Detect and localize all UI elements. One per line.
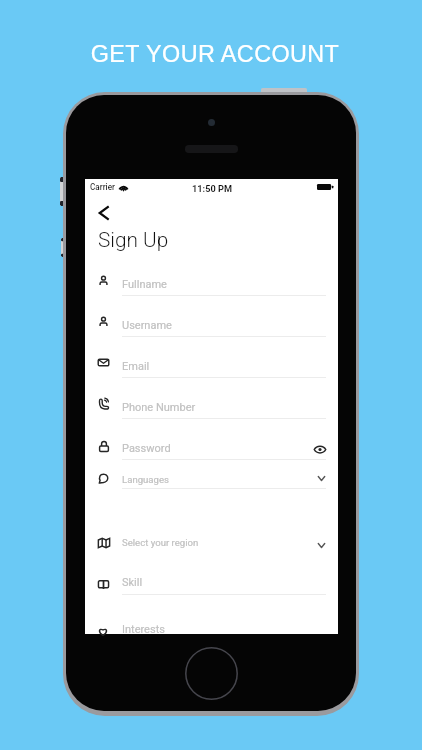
staticText: Sign Up <box>98 228 169 252</box>
staticText: Phone Number <box>122 401 196 414</box>
staticText: Interests <box>122 623 165 636</box>
staticText: GET YOUR ACCOUNT <box>4 41 422 67</box>
staticText: Select your region <box>122 537 199 548</box>
staticText: Skill <box>122 576 143 589</box>
staticText: 11:50 PM <box>192 183 232 194</box>
staticText: Fullname <box>122 278 167 291</box>
staticText: Username <box>122 319 172 332</box>
button[interactable] <box>94 569 330 595</box>
button[interactable] <box>94 270 330 296</box>
staticText: Languages <box>122 474 170 485</box>
button[interactable]: Back <box>93 201 115 225</box>
button[interactable] <box>94 434 330 460</box>
staticText: Email <box>122 360 150 373</box>
button[interactable] <box>94 463 330 489</box>
button[interactable] <box>94 393 330 419</box>
staticText: Password <box>122 442 171 455</box>
button[interactable] <box>94 530 330 556</box>
button[interactable]: Show password <box>314 445 326 454</box>
staticText: Carrier <box>90 182 115 192</box>
button[interactable] <box>94 615 330 641</box>
button[interactable] <box>94 311 330 337</box>
button[interactable] <box>94 352 330 378</box>
